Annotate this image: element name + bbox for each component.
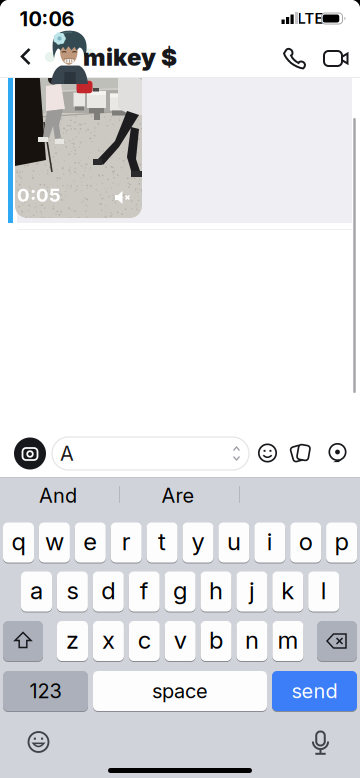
- staticText: c: [138, 626, 151, 654]
- staticText: f: [140, 576, 149, 605]
- button[interactable]: Dictation: [307, 730, 333, 756]
- staticText: g: [173, 576, 187, 605]
- staticText: r: [122, 527, 131, 556]
- staticText: Are: [161, 484, 194, 507]
- button[interactable]: m: [272, 620, 303, 661]
- staticText: j: [249, 576, 255, 605]
- staticText: space: [152, 679, 208, 703]
- button[interactable]: n: [236, 620, 267, 661]
- staticText: z: [66, 626, 79, 654]
- button[interactable]: Emoji: [25, 729, 51, 755]
- button[interactable]: x: [93, 620, 124, 661]
- button[interactable]: Shift: [3, 621, 43, 662]
- staticText: i: [267, 527, 273, 556]
- staticText: w: [45, 527, 64, 556]
- button[interactable]: space: [93, 671, 267, 712]
- staticText: q: [11, 527, 25, 556]
- button[interactable]: r: [111, 522, 142, 563]
- button[interactable]: w: [39, 522, 70, 563]
- button[interactable]: p: [326, 522, 357, 563]
- button[interactable]: c: [129, 620, 160, 661]
- staticText: y: [191, 527, 204, 556]
- button[interactable]: Are: [123, 477, 233, 513]
- button[interactable]: k: [272, 571, 303, 612]
- staticText: And: [39, 484, 77, 507]
- button[interactable]: And: [3, 477, 113, 513]
- button[interactable]: Memories: [289, 442, 313, 464]
- staticText: k: [281, 576, 294, 605]
- button[interactable]: Message: [52, 437, 249, 470]
- button[interactable]: f: [129, 571, 160, 612]
- button[interactable]: y: [182, 522, 213, 563]
- button[interactable]: u: [218, 522, 249, 563]
- button[interactable]: Camera: [14, 437, 46, 469]
- staticText: mikey $: [83, 43, 177, 71]
- staticText: m: [277, 626, 298, 654]
- button[interactable]: d: [93, 571, 124, 612]
- button[interactable]: 123: [3, 671, 88, 712]
- staticText: h: [209, 576, 223, 605]
- button[interactable]: Delete: [317, 621, 357, 662]
- staticText: o: [299, 527, 313, 556]
- staticText: u: [227, 527, 241, 556]
- button[interactable]: v: [165, 620, 196, 661]
- button[interactable]: send: [272, 671, 357, 712]
- staticText: 123: [29, 679, 61, 703]
- staticText: d: [101, 576, 115, 605]
- button[interactable]: h: [200, 571, 231, 612]
- button[interactable]: g: [165, 571, 196, 612]
- button[interactable]: Map: [326, 442, 348, 464]
- staticText: v: [174, 626, 187, 654]
- staticText: 0:05: [17, 184, 61, 206]
- staticText: t: [158, 527, 166, 556]
- staticText: send: [291, 679, 337, 703]
- staticText: n: [245, 626, 259, 654]
- staticText: A: [60, 442, 74, 465]
- button[interactable]: o: [290, 522, 321, 563]
- button[interactable]: Voice call: [282, 44, 308, 72]
- staticText: e: [83, 527, 97, 556]
- button[interactable]: q: [3, 522, 34, 563]
- staticText: b: [209, 626, 223, 654]
- button[interactable]: i: [254, 522, 285, 563]
- staticText: LTE: [297, 10, 323, 27]
- button[interactable]: Video message: [15, 67, 142, 218]
- button[interactable]: s: [57, 571, 88, 612]
- staticText: 10:06: [19, 7, 74, 31]
- button[interactable]: Stickers: [256, 442, 278, 464]
- button[interactable]: z: [57, 620, 88, 661]
- button[interactable]: Back: [11, 44, 41, 69]
- button[interactable]: b: [201, 620, 232, 661]
- button[interactable]: j: [236, 571, 267, 612]
- staticText: x: [102, 626, 115, 654]
- button[interactable]: a: [21, 571, 52, 612]
- staticText: l: [321, 576, 327, 605]
- button[interactable]: t: [147, 522, 178, 563]
- button[interactable]: e: [75, 522, 106, 563]
- button[interactable]: l: [308, 571, 339, 612]
- staticText: a: [30, 576, 43, 605]
- button[interactable]: Video call: [323, 49, 350, 68]
- staticText: p: [335, 527, 349, 556]
- staticText: s: [66, 576, 78, 605]
